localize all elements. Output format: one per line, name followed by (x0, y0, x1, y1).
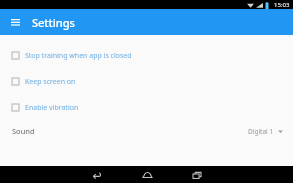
button[interactable]: Recent apps (189, 167, 205, 183)
button[interactable]: Keep screen on (0, 74, 293, 89)
staticText: Digital 1 (248, 127, 274, 136)
staticText: Sound (12, 126, 35, 136)
button[interactable]: Back (88, 167, 104, 183)
button[interactable]: Sound (0, 123, 293, 139)
staticText: Keep screen on (25, 77, 76, 87)
staticText: 15:03 (274, 1, 290, 9)
button[interactable]: Home (139, 167, 155, 183)
staticText: Stop training when app is closed (25, 51, 132, 61)
staticText: Settings (32, 15, 75, 30)
button[interactable]: Enable vibration (0, 100, 293, 115)
staticText: Enable vibration (25, 103, 79, 113)
button[interactable]: Stop training when app is closed (0, 48, 293, 63)
button[interactable]: Open navigation drawer (6, 13, 24, 31)
